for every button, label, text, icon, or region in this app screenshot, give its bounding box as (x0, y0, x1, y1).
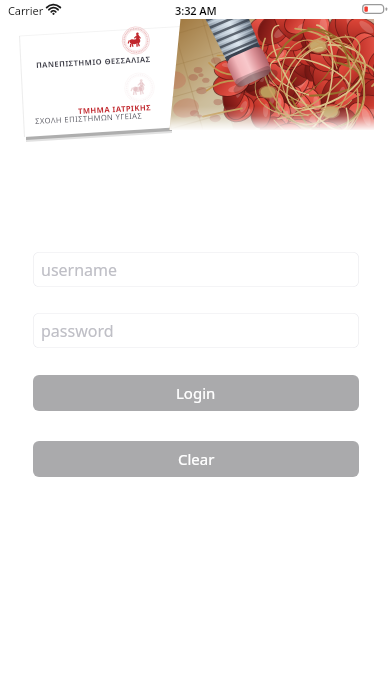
button[interactable]: username (33, 252, 359, 287)
staticText: username (41, 259, 118, 281)
staticText: 3:32 AM (175, 3, 217, 18)
staticText: ΠΑΝΕΠΙΣΤΗΜΙΟ ΘΕΣΣΑΛΙΑΣ (36, 54, 151, 70)
staticText: Carrier (8, 3, 44, 18)
button[interactable]: password (33, 313, 359, 348)
button[interactable]: Clear (33, 441, 359, 477)
staticText: Login (176, 383, 216, 403)
staticText: ΤΜΗΜΑ ΙΑΤΡΙΚΗΣ (78, 102, 152, 116)
staticText: password (41, 320, 114, 342)
staticText: ΣΧΟΛΗ ΕΠΙΣΤΗΜΩΝ ΥΓΕΙΑΣ (35, 110, 143, 126)
staticText: Clear (178, 449, 215, 469)
button[interactable]: Login (33, 375, 359, 411)
